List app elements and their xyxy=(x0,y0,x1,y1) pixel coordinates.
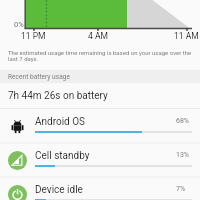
staticText: 68% xyxy=(176,117,189,125)
staticText: Recent battery usage xyxy=(8,73,70,81)
other: Cell standby xyxy=(8,151,27,170)
staticText: 4 AM xyxy=(88,31,108,41)
staticText: 0% xyxy=(14,20,24,29)
other: Android OS xyxy=(8,117,27,136)
button[interactable]: Android OS xyxy=(0,109,200,143)
staticText: 7h 44m 26s on battery xyxy=(8,90,108,102)
button[interactable]: Device idle xyxy=(0,177,200,200)
staticText: 7% xyxy=(176,185,186,193)
other: Device idle xyxy=(8,185,27,200)
staticText: Device idle xyxy=(35,184,83,196)
staticText: 13% xyxy=(176,151,189,159)
staticText: 11 PM xyxy=(21,31,46,41)
staticText: Android OS xyxy=(35,116,86,128)
staticText: Cell standby xyxy=(35,150,90,162)
staticText: 11 AM xyxy=(174,31,199,41)
button[interactable]: Cell standby xyxy=(0,143,200,177)
staticText: The estimated usage time remaining is ba… xyxy=(8,49,194,63)
